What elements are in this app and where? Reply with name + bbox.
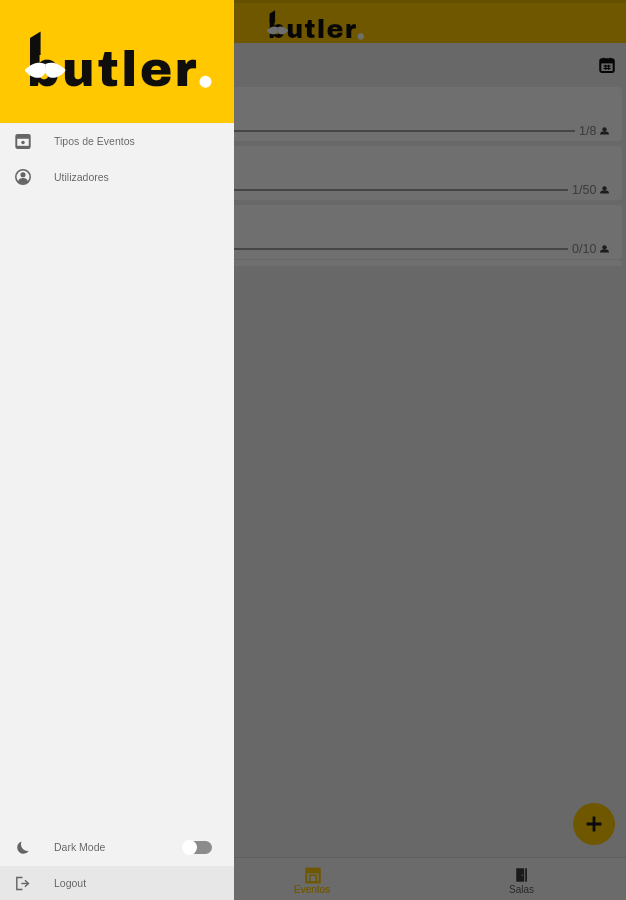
- button[interactable]: Toggle dark mode: [182, 839, 212, 855]
- button[interactable]: Add event: [573, 803, 615, 845]
- staticText: Eventos: [294, 884, 331, 895]
- staticText: Tipos de Eventos: [54, 135, 135, 147]
- button[interactable]: Salas: [417, 858, 626, 900]
- button[interactable]: Festa de Ano Novo: [4, 146, 622, 200]
- staticText: 0/10: [572, 242, 597, 256]
- staticText: Dark Mode: [54, 841, 106, 853]
- button[interactable]: Logout: [0, 866, 234, 900]
- button[interactable]: Jantar de Natal: [4, 87, 622, 141]
- staticText: 1/50: [572, 183, 597, 197]
- button[interactable]: Tipos de Eventos: [0, 123, 234, 159]
- staticText: Reservas: [83, 884, 126, 895]
- staticText: Logout: [54, 877, 87, 889]
- button[interactable]: Dark Mode: [0, 828, 234, 866]
- staticText: butler: [268, 16, 358, 44]
- staticText: Utilizadores: [54, 171, 109, 183]
- staticText: Salas: [509, 884, 535, 895]
- button[interactable]: Reservas: [0, 858, 208, 900]
- staticText: butler: [27, 43, 199, 96]
- button[interactable]: Reuniao Geral: [4, 205, 622, 259]
- button[interactable]: Eventos: [208, 858, 417, 900]
- staticText: 1/8: [579, 124, 597, 138]
- button[interactable]: Utilizadores: [0, 159, 234, 195]
- button[interactable]: Select date: [593, 51, 620, 78]
